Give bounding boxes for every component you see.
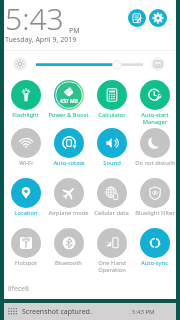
staticText: Bluelight Filter [135, 209, 175, 217]
staticText: Airplane mode [48, 209, 89, 217]
button[interactable]: Hotspot [4, 227, 47, 277]
button[interactable]: Settings [149, 9, 167, 27]
button[interactable]: Auto brightness [151, 57, 165, 71]
button[interactable]: Location [4, 177, 47, 227]
button[interactable]: Bluelight Filter [133, 177, 176, 227]
button[interactable]: Auto-sync [133, 227, 176, 277]
staticText: Calculator [98, 111, 126, 119]
button[interactable]: Flashlight [4, 79, 47, 127]
button[interactable]: Sound [90, 127, 133, 177]
staticText: Auto-start Manager [141, 111, 169, 126]
button[interactable]: Bluetooth [47, 227, 90, 277]
button[interactable]: Do not disturb [133, 127, 176, 177]
staticText: Auto-rotate [53, 159, 85, 167]
staticText: Auto-sync [141, 259, 168, 267]
staticText: Cellular data [94, 209, 129, 217]
staticText: One Hand Operation [98, 259, 126, 274]
staticText: Flashlight [12, 111, 39, 119]
button[interactable]: Auto-rotate [47, 127, 90, 177]
staticText: Sound [103, 159, 121, 167]
staticText: PM [69, 26, 80, 36]
button[interactable]: Wi-Fi [4, 127, 47, 177]
button[interactable]: Screenshot captured. [4, 303, 176, 320]
staticText: Hotspot [15, 259, 37, 267]
staticText: 5:43 PM [132, 308, 155, 316]
staticText: Bluetooth [55, 259, 82, 267]
staticText: Tuesday, April 9, 2019 [5, 35, 77, 45]
button[interactable]: 437 MB [47, 79, 90, 127]
staticText: Location [14, 209, 38, 217]
button[interactable]: Edit quick settings [128, 9, 146, 27]
button[interactable]: Airplane mode [47, 177, 90, 227]
button[interactable]: Calculator [90, 79, 133, 127]
button[interactable]: Brightness [13, 57, 27, 71]
staticText: 5:43 [5, 0, 64, 39]
staticText: Wi-Fi [19, 159, 33, 167]
staticText: Power & Boost [48, 111, 89, 119]
staticText: Screenshot captured. [22, 307, 92, 317]
staticText: lifecell [8, 284, 29, 294]
button[interactable]: Cellular data [90, 177, 133, 227]
staticText: 437 MB [60, 98, 78, 105]
button[interactable]: One Hand Operation [90, 227, 133, 277]
button[interactable]: Auto-start Manager [133, 79, 176, 127]
staticText: Do not disturb [135, 159, 175, 167]
